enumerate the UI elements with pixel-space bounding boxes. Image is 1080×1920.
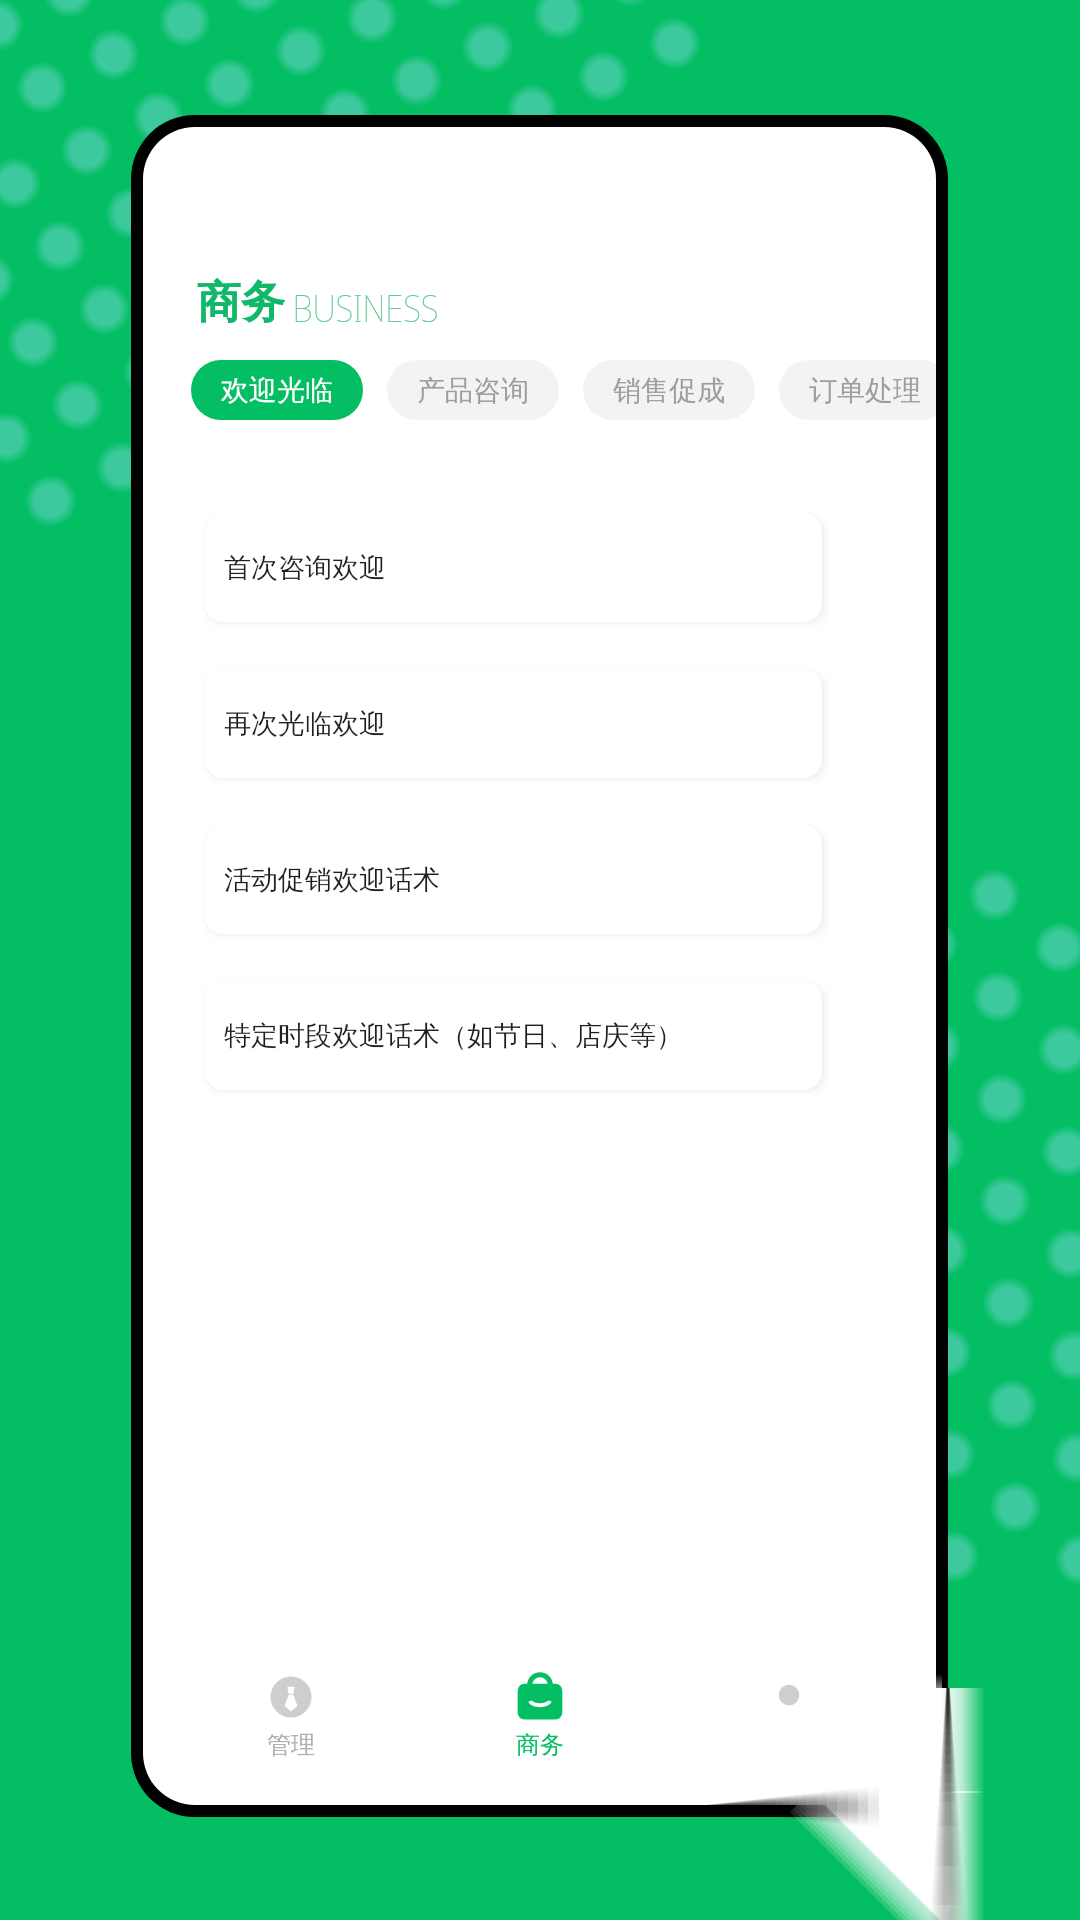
staticText: 商务 (516, 1730, 564, 1760)
staticText: 管理 (267, 1730, 315, 1760)
button[interactable]: 再次光临欢迎 (205, 669, 822, 778)
staticText: 首次咨询欢迎 (224, 551, 386, 585)
staticText: 订单处理 (809, 373, 921, 408)
staticText: BUSINESS (292, 282, 439, 332)
staticText: 再次光临欢迎 (224, 707, 386, 741)
button[interactable]: 欢迎光临 (191, 360, 363, 420)
button[interactable]: 产品咨询 (387, 360, 559, 420)
other: 商务 (516, 1673, 564, 1721)
button[interactable]: 活动促销欢迎话术 (205, 825, 822, 934)
button[interactable]: 商务 (415, 1673, 664, 1760)
button[interactable]: 销售促成 (583, 360, 755, 420)
staticText: 特定时段欢迎话术（如节日、店庆等） (224, 1019, 683, 1053)
button[interactable]: 更多 (664, 1673, 913, 1717)
button[interactable]: 特定时段欢迎话术（如节日、店庆等） (205, 981, 822, 1090)
staticText: 欢迎光临 (221, 373, 333, 408)
button[interactable]: 首次咨询欢迎 (205, 513, 822, 622)
staticText: 活动促销欢迎话术 (224, 863, 440, 897)
button[interactable]: 订单处理 (779, 360, 936, 420)
button[interactable]: 管理 (166, 1673, 415, 1760)
other: 管理 (267, 1673, 315, 1721)
staticText: 销售促成 (613, 373, 725, 408)
staticText: 产品咨询 (417, 373, 529, 408)
staticText: 商务 (197, 275, 285, 330)
